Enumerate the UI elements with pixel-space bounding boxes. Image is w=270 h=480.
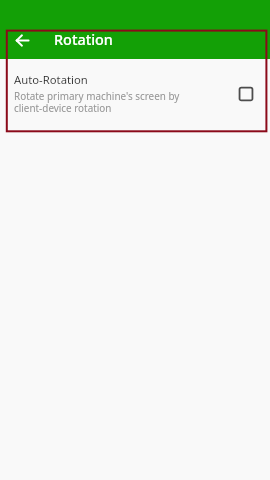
button[interactable]: Auto-Rotation checkbox, unchecked [234,82,258,106]
staticText: Rotate primary machine's screen by clien… [14,89,196,115]
staticText: Auto-Rotation [14,72,88,87]
button[interactable]: Auto-Rotation [0,59,270,121]
staticText: Rotation [54,30,113,50]
button[interactable]: Back [12,30,32,50]
